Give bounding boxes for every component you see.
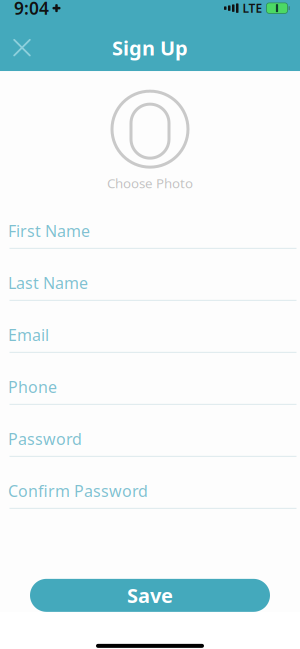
button[interactable]: Email <box>0 318 300 370</box>
button[interactable]: Confirm Password <box>0 474 300 526</box>
staticText: Last Name <box>8 272 88 293</box>
staticText: 9:04 <box>14 0 49 20</box>
button[interactable]: Password <box>0 422 300 474</box>
staticText: Save <box>127 582 173 609</box>
staticText: Password <box>8 428 82 449</box>
button[interactable]: Save <box>30 579 270 612</box>
staticText: LTE <box>242 0 262 16</box>
staticText: Sign Up <box>112 34 188 61</box>
staticText: Email <box>8 324 49 345</box>
button[interactable]: Last Name <box>0 266 300 318</box>
staticText: First Name <box>8 220 90 241</box>
button[interactable]: Phone <box>0 370 300 422</box>
button[interactable]: Choose Photo <box>107 90 193 192</box>
button[interactable]: Close <box>0 26 44 70</box>
button[interactable]: First Name <box>0 214 300 266</box>
staticText: Confirm Password <box>8 480 148 501</box>
staticText: Phone <box>8 376 57 397</box>
staticText: Choose Photo <box>107 174 193 192</box>
